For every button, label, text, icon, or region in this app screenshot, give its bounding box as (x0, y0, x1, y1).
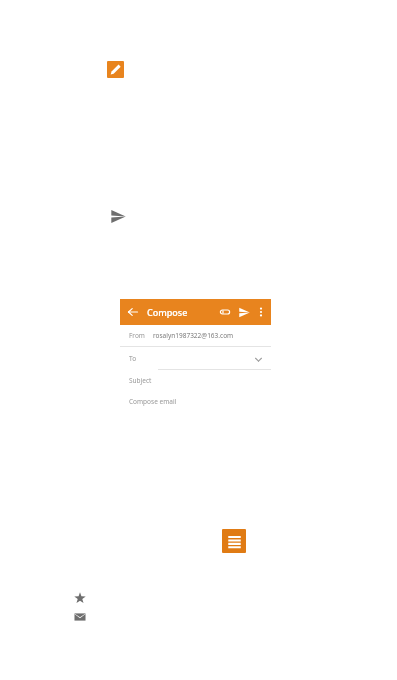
button[interactable]: Send (108, 206, 128, 226)
staticText: Subject (129, 376, 152, 385)
button[interactable]: Compose new email (107, 61, 124, 78)
button[interactable]: Compose email (120, 391, 271, 464)
staticText: Compose (147, 306, 188, 318)
button[interactable]: From (120, 325, 271, 346)
button[interactable]: Back (126, 305, 140, 319)
button[interactable]: Attach file (218, 305, 232, 319)
button[interactable]: To (120, 347, 271, 370)
button[interactable]: Starred (73, 591, 87, 605)
button[interactable]: Mail (73, 610, 87, 624)
button[interactable]: Subject (120, 370, 271, 391)
button[interactable]: Send (237, 305, 251, 319)
staticText: rosalyn1987322@163.com (153, 331, 234, 340)
button[interactable]: More options (255, 306, 267, 318)
staticText: To (129, 354, 137, 363)
staticText: Compose email (129, 397, 177, 406)
staticText: From (129, 331, 145, 340)
button[interactable]: Menu (222, 529, 246, 553)
